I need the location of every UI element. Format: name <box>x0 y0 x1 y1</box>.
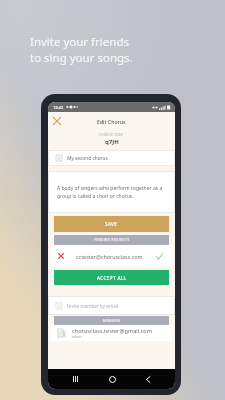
staticText: My second chorus <box>67 155 108 162</box>
staticText: 13:42 <box>53 105 64 110</box>
button[interactable]: cctester@chorusclass.com <box>51 245 172 267</box>
staticText: A body of singers who perform together a… <box>57 185 163 200</box>
staticText: Invite your friends <box>30 34 129 50</box>
button[interactable]: Close <box>50 114 64 128</box>
staticText: PENDING REQUESTS <box>94 238 130 242</box>
button[interactable]: Back <box>139 370 157 388</box>
button[interactable]: SAVE <box>54 216 169 232</box>
staticText: chorusclass.tester@gmail.com <box>72 327 152 335</box>
staticText: to sing your songs. <box>30 50 133 66</box>
staticText: SAVE <box>105 221 118 227</box>
button[interactable]: ACCEPT ALL <box>54 270 169 285</box>
staticText: MEMBERS <box>103 319 121 323</box>
staticText: Edit Chorus <box>97 118 126 125</box>
staticText: CHORUS CODE <box>99 133 124 137</box>
button[interactable]: Invite member by email <box>48 296 175 315</box>
button[interactable]: Home <box>103 370 121 388</box>
staticText: q7JH <box>105 138 119 146</box>
staticText: Invite member by email <box>67 303 119 309</box>
button[interactable]: Recents <box>66 370 84 388</box>
staticText: admin <box>72 335 82 339</box>
button[interactable]: My second chorus <box>48 150 175 166</box>
staticText: ACCEPT ALL <box>97 275 127 281</box>
staticText: cctester@chorusclass.com <box>76 253 143 260</box>
button[interactable]: chorusclass.tester@gmail.com <box>51 325 172 341</box>
